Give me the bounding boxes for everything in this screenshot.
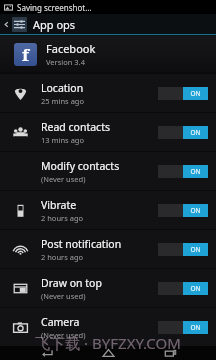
staticText: (Never used) (41, 174, 86, 184)
staticText: ON (190, 284, 201, 293)
staticText: Facebook (46, 41, 96, 56)
staticText: Read contacts (41, 120, 110, 134)
staticText: 13 mins ago (41, 135, 85, 145)
staticText: ON (190, 245, 201, 254)
staticText: Modify contacts (41, 159, 120, 173)
staticText: Vibrate (41, 198, 77, 212)
staticText: 25 mins ago (41, 96, 85, 106)
button[interactable]: Back to App ops (0, 14, 216, 34)
button[interactable]: ON (158, 243, 208, 256)
button[interactable]: Camera (0, 308, 216, 346)
staticText: ON (190, 323, 201, 332)
button[interactable]: Post notification (0, 230, 216, 268)
button[interactable]: Draw on top (0, 269, 216, 307)
button[interactable]: Recents (155, 346, 185, 360)
button[interactable]: Back (32, 346, 62, 360)
staticText: App ops (33, 17, 76, 32)
staticText: (Never used) (41, 330, 86, 340)
button[interactable]: Vibrate (0, 191, 216, 229)
staticText: Draw on top (41, 276, 102, 290)
staticText: 飞下载 · BYFZXY.COM (35, 333, 181, 353)
staticText: Camera (41, 315, 80, 329)
staticText: (Never used) (41, 291, 86, 301)
staticText: Version 3.4 (46, 57, 85, 67)
button[interactable]: ON (158, 204, 208, 217)
button[interactable]: f (0, 36, 216, 72)
button[interactable]: Home (93, 346, 123, 360)
button[interactable]: ON (158, 321, 208, 334)
button[interactable]: Modify contacts (0, 152, 216, 190)
button[interactable]: ON (158, 87, 208, 100)
staticText: 2 hours ago (41, 213, 84, 223)
button[interactable]: Read contacts (0, 113, 216, 151)
staticText: Location (41, 81, 84, 95)
staticText: ON (190, 206, 201, 215)
button[interactable]: Location (0, 74, 216, 112)
staticText: ON (190, 89, 201, 98)
button[interactable]: ON (158, 282, 208, 295)
staticText: Post notification (41, 237, 122, 251)
staticText: ON (190, 128, 201, 137)
staticText: f (22, 43, 29, 66)
staticText: ON (190, 167, 201, 176)
staticText: Saving screenshot… (17, 2, 92, 13)
button[interactable]: ON (158, 165, 208, 178)
button[interactable]: ON (158, 126, 208, 139)
staticText: 2 hours ago (41, 252, 84, 262)
